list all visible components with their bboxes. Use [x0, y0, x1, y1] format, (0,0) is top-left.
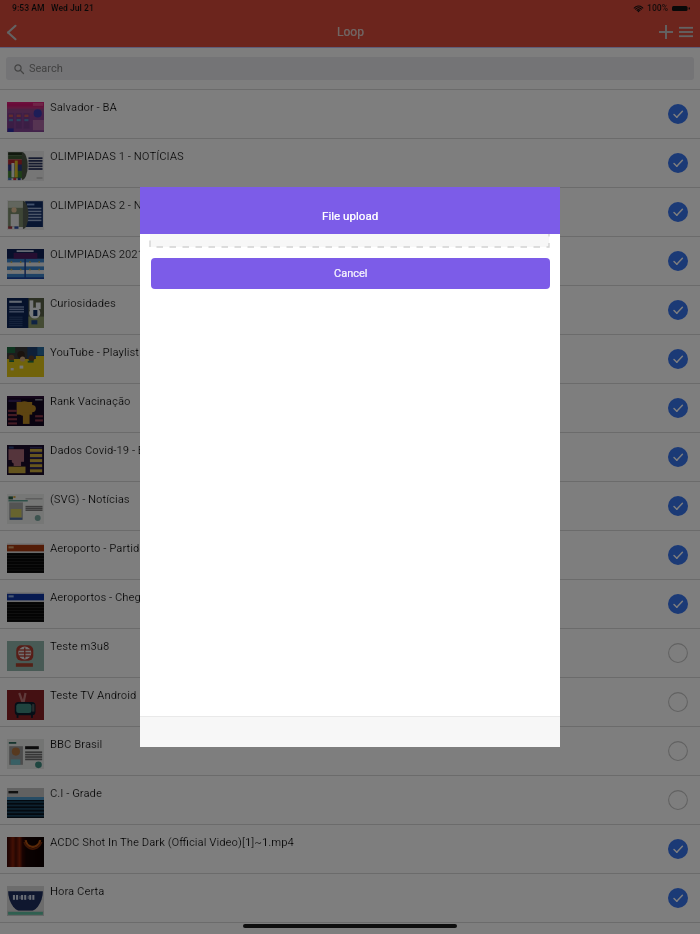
staticText: Loop [337, 25, 364, 39]
button[interactable]: Curiosidades [0, 285, 700, 334]
staticText: Rank Vacinação [50, 395, 650, 408]
staticText: File upload [322, 209, 379, 223]
staticText: YouTube - Playlist [50, 346, 650, 359]
staticText: Cancel [334, 267, 368, 280]
staticText: OLIMPIADAS 2021 - QUADRO DE MEDALHAS [50, 248, 650, 261]
staticText: Dados Covid-19 - Brasil [50, 444, 650, 457]
staticText: (SVG) - Notícias [50, 493, 650, 506]
staticText: Curiosidades [50, 297, 650, 310]
staticText: 100% [647, 3, 669, 13]
button[interactable]: Search [6, 57, 694, 80]
button[interactable]: YouTube - Playlist [0, 334, 700, 383]
button[interactable]: OLIMPIADAS 1 - NOTÍCIAS [0, 138, 700, 187]
button[interactable]: (SVG) - Notícias [0, 481, 700, 530]
button[interactable]: Menu [673, 19, 698, 44]
button[interactable]: Aeroportos - Chegadas [0, 579, 700, 628]
staticText: ACDC Shot In The Dark (Official Video)[1… [50, 836, 650, 849]
button[interactable]: Rank Vacinação [0, 383, 700, 432]
button[interactable]: Back [0, 20, 23, 44]
staticText: Teste TV Android [50, 689, 650, 702]
staticText: Salvador - BA [50, 101, 650, 114]
button[interactable]: BBC Brasil [0, 726, 700, 775]
button[interactable]: Aeroporto - Partidas [0, 530, 700, 579]
staticText: Hora Certa [50, 885, 650, 898]
staticText: 9:53 AM [12, 3, 45, 13]
staticText: Wed Jul 21 [51, 3, 94, 13]
button[interactable]: OLIMPIADAS 2021 - QUADRO DE MEDALHAS [0, 236, 700, 285]
staticText: Teste m3u8 [50, 640, 650, 653]
staticText: OLIMPIADAS 1 - NOTÍCIAS [50, 150, 650, 163]
button[interactable]: Dados Covid-19 - Brasil [0, 432, 700, 481]
button[interactable]: ACDC Shot In The Dark (Official Video)[1… [0, 824, 700, 873]
button[interactable]: C.I - Grade [0, 775, 700, 824]
button[interactable]: Hora Certa [0, 873, 700, 922]
button[interactable]: Salvador - BA [0, 89, 700, 138]
staticText: Aeroportos - Chegadas [50, 591, 650, 604]
staticText: OLIMPIADAS 2 - NOTÍCIAS [50, 199, 650, 212]
button[interactable]: Teste m3u8 [0, 628, 700, 677]
button[interactable]: Teste TV Android [0, 677, 700, 726]
button[interactable]: OLIMPIADAS 2 - NOTÍCIAS [0, 187, 700, 236]
button[interactable]: Cancel [151, 258, 550, 289]
staticText: Search [29, 62, 63, 75]
staticText: C.I - Grade [50, 787, 650, 800]
button[interactable]: Add [653, 19, 678, 44]
staticText: BBC Brasil [50, 738, 650, 751]
staticText: Aeroporto - Partidas [50, 542, 650, 555]
